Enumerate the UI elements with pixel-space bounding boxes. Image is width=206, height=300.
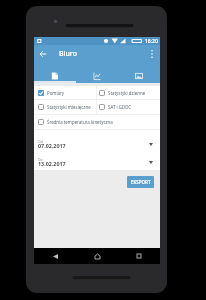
button[interactable]: Statystyki dzienne: [97, 86, 160, 99]
staticText: Statystyki miesięczne: [47, 104, 91, 110]
button[interactable]: Pomiary: [34, 86, 96, 99]
staticText: Pomiary: [47, 90, 65, 96]
staticText: Statystyki dzienne: [108, 90, 146, 96]
button[interactable]: More options: [143, 45, 160, 62]
button[interactable]: Zdjecia: [118, 62, 160, 83]
staticText: 16:20: [145, 38, 158, 45]
button[interactable]: EKSPORT: [127, 176, 154, 188]
button[interactable]: Do: [34, 150, 160, 170]
button[interactable]: Home: [76, 248, 118, 264]
staticText: SAT i GDDC: [108, 104, 132, 110]
staticText: EKSPORT: [131, 179, 151, 185]
button[interactable]: Raport: [34, 62, 76, 83]
button[interactable]: Statystyki miesięczne: [34, 100, 96, 114]
button[interactable]: SAT i GDDC: [97, 100, 160, 114]
button[interactable]: Od: [34, 130, 160, 150]
button[interactable]: Back: [34, 248, 76, 264]
staticText: 13.02.2017: [38, 160, 66, 167]
staticText: Biuro: [59, 49, 77, 59]
staticText: Do: [38, 157, 43, 162]
button[interactable]: Wykresy: [76, 62, 118, 83]
staticText: 07.02.2017: [38, 142, 66, 149]
staticText: Od: [38, 139, 43, 144]
staticText: Średnia temperatura kinetyczna: [47, 119, 113, 125]
button[interactable]: Średnia temperatura kinetyczna: [34, 115, 160, 129]
button[interactable]: Back: [34, 45, 51, 62]
button[interactable]: Recents: [118, 248, 160, 264]
